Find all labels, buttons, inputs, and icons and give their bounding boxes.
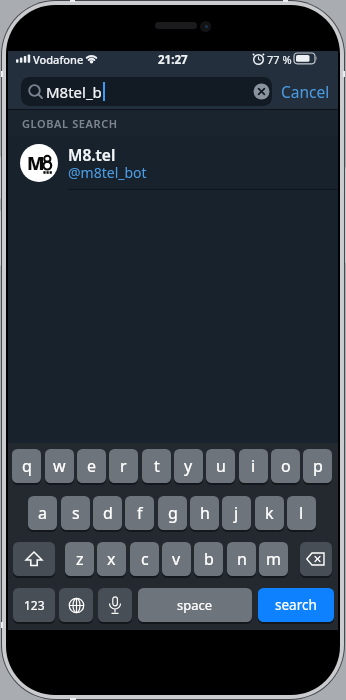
staticText: m bbox=[266, 548, 281, 570]
button[interactable]: search bbox=[258, 588, 334, 622]
staticText: w bbox=[53, 455, 66, 477]
staticText: M8.tel bbox=[68, 144, 116, 165]
button[interactable]: M8tel_b bbox=[21, 77, 272, 106]
staticText: GLOBAL SEARCH bbox=[22, 116, 118, 131]
staticText: s bbox=[72, 502, 80, 524]
button[interactable] bbox=[13, 542, 55, 576]
button[interactable]: Cancel bbox=[274, 75, 336, 108]
button[interactable]: M bbox=[8, 136, 338, 190]
staticText: 77 % bbox=[267, 52, 292, 67]
staticText: j bbox=[234, 502, 239, 524]
staticText: 123 bbox=[24, 597, 45, 613]
button[interactable]: g bbox=[158, 496, 187, 530]
staticText: n bbox=[237, 548, 247, 570]
staticText: @m8tel_bot bbox=[68, 163, 147, 182]
staticText: k bbox=[265, 502, 274, 524]
button[interactable]: n bbox=[227, 542, 256, 576]
button[interactable]: p bbox=[303, 449, 332, 483]
staticText: a bbox=[38, 502, 47, 524]
button[interactable]: h bbox=[190, 496, 219, 530]
staticText: M8tel_b bbox=[46, 82, 102, 102]
staticText: Vodafone bbox=[33, 52, 84, 67]
button[interactable]: y bbox=[174, 449, 203, 483]
staticText: space bbox=[177, 596, 213, 614]
staticText: f bbox=[137, 502, 143, 524]
staticText: c bbox=[141, 548, 149, 570]
staticText: Cancel bbox=[281, 81, 330, 102]
button[interactable]: l bbox=[287, 496, 316, 530]
staticText: v bbox=[172, 548, 181, 570]
button[interactable]: a bbox=[28, 496, 57, 530]
button[interactable]: q bbox=[12, 449, 41, 483]
staticText: h bbox=[200, 502, 210, 524]
staticText: search bbox=[275, 596, 317, 614]
button[interactable]: x bbox=[97, 542, 126, 576]
staticText: g bbox=[168, 502, 178, 524]
staticText: 21:27 bbox=[158, 52, 188, 68]
button[interactable]: m bbox=[259, 542, 288, 576]
button[interactable]: r bbox=[109, 449, 138, 483]
staticText: e bbox=[87, 455, 97, 477]
staticText: l bbox=[299, 502, 304, 524]
button[interactable] bbox=[300, 542, 332, 576]
staticText: z bbox=[76, 548, 84, 570]
button[interactable]: v bbox=[162, 542, 191, 576]
staticText: o bbox=[281, 455, 291, 477]
staticText: q bbox=[22, 455, 32, 477]
button[interactable]: space bbox=[138, 588, 252, 622]
staticText: x bbox=[107, 548, 116, 570]
staticText: b bbox=[204, 548, 214, 570]
button[interactable]: k bbox=[255, 496, 284, 530]
button[interactable]: f bbox=[125, 496, 154, 530]
button[interactable]: e bbox=[77, 449, 106, 483]
button[interactable]: 123 bbox=[13, 588, 55, 622]
button[interactable]: i bbox=[239, 449, 268, 483]
button[interactable]: b bbox=[194, 542, 223, 576]
button[interactable]: w bbox=[45, 449, 74, 483]
staticText: p bbox=[313, 455, 323, 477]
button[interactable]: z bbox=[65, 542, 94, 576]
button[interactable]: c bbox=[130, 542, 159, 576]
staticText: y bbox=[184, 455, 193, 477]
button[interactable]: d bbox=[93, 496, 122, 530]
staticText: i bbox=[251, 455, 256, 477]
staticText: r bbox=[120, 455, 127, 477]
button[interactable] bbox=[98, 588, 132, 622]
button[interactable] bbox=[59, 588, 93, 622]
button[interactable]: s bbox=[61, 496, 90, 530]
staticText: d bbox=[103, 502, 113, 524]
button[interactable]: u bbox=[206, 449, 235, 483]
staticText: M bbox=[27, 151, 45, 176]
button[interactable]: t bbox=[142, 449, 171, 483]
button[interactable]: o bbox=[271, 449, 300, 483]
staticText: t bbox=[154, 455, 160, 477]
staticText: u bbox=[216, 455, 226, 477]
button[interactable]: j bbox=[222, 496, 251, 530]
